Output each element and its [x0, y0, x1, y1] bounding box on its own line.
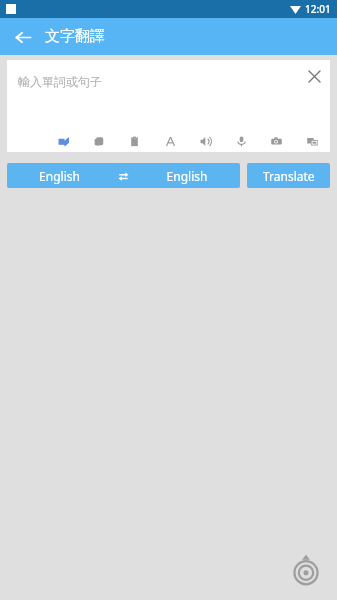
staticText: English: [7, 168, 112, 184]
button[interactable]: Translate: [247, 163, 330, 188]
button[interactable]: Speaker: [195, 131, 215, 151]
button[interactable]: Layers: [89, 131, 109, 151]
staticText: English: [134, 168, 240, 184]
button[interactable]: Record: [287, 551, 325, 589]
button[interactable]: Microphone: [231, 131, 251, 151]
staticText: 12:01: [305, 2, 331, 16]
button[interactable]: Translate image: [302, 131, 322, 151]
button[interactable]: Clear: [301, 63, 327, 89]
button[interactable]: Handwriting: [53, 131, 73, 151]
button[interactable]: Clipboard: [124, 131, 144, 151]
staticText: Translate: [263, 168, 315, 184]
button[interactable]: Back: [8, 22, 38, 52]
button[interactable]: Camera: [266, 131, 286, 151]
staticText: 輸入單詞或句子: [18, 74, 102, 89]
staticText: 文字翻譯: [45, 27, 105, 46]
button[interactable]: English: [7, 163, 240, 188]
button[interactable]: Text: [160, 131, 180, 151]
